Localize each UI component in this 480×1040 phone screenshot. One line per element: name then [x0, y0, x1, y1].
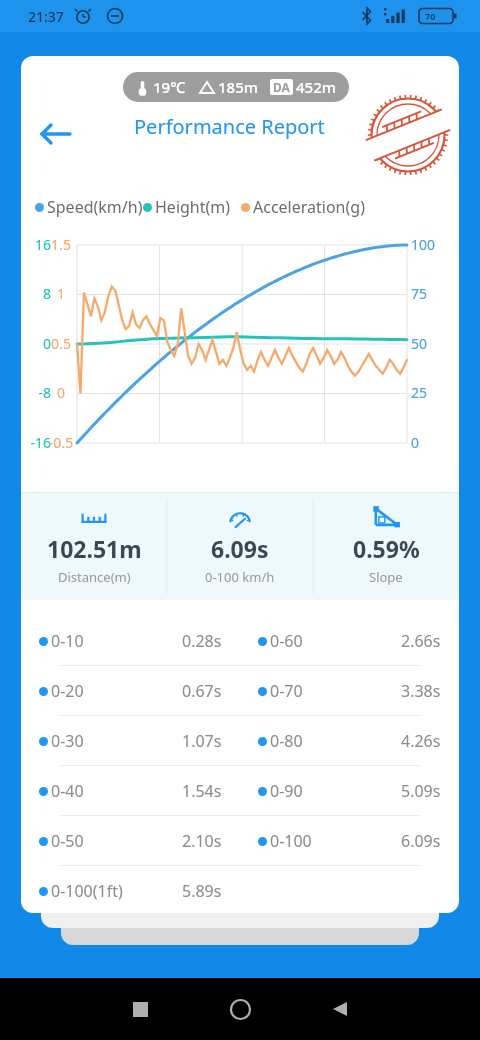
button[interactable]: 6.09s: [167, 492, 313, 600]
staticText: 70: [425, 10, 436, 22]
staticText: 25: [411, 383, 445, 402]
button[interactable]: 0-40: [21, 766, 459, 815]
staticText: 19℃: [153, 77, 186, 97]
staticText: 50: [411, 334, 445, 353]
staticText: 2.10s: [182, 830, 222, 852]
staticText: 0-60: [270, 630, 303, 652]
staticText: 16: [25, 235, 51, 254]
button[interactable]: 0-100(1ft): [21, 866, 459, 913]
staticText: 0-100: [270, 830, 312, 852]
button[interactable]: Back: [316, 985, 364, 1033]
staticText: 5.09s: [401, 780, 441, 802]
button[interactable]: 102.51m: [21, 492, 167, 600]
staticText: 0: [25, 334, 51, 353]
staticText: 0-20: [51, 680, 84, 702]
staticText: 3.38s: [401, 680, 441, 702]
button[interactable]: 0-20: [21, 666, 459, 715]
staticText: 185m: [218, 77, 258, 97]
staticText: 0.67s: [182, 680, 222, 702]
button[interactable]: Back: [29, 108, 81, 160]
staticText: 0-90: [270, 780, 303, 802]
button[interactable]: 0-50: [21, 816, 459, 865]
staticText: 0-30: [51, 730, 84, 752]
staticText: 0-100(1ft): [51, 880, 123, 902]
staticText: Slope: [369, 568, 403, 586]
staticText: 0: [47, 383, 75, 402]
staticText: 0.59%: [353, 533, 420, 564]
staticText: Height(m): [155, 196, 231, 218]
button[interactable]: 0-30: [21, 716, 459, 765]
staticText: 452m: [296, 77, 336, 97]
staticText: 4.26s: [401, 730, 441, 752]
button[interactable]: 0-10: [21, 616, 459, 665]
button[interactable]: Home: [216, 985, 264, 1033]
staticText: 1.07s: [182, 730, 222, 752]
staticText: -8: [25, 383, 51, 402]
staticText: -16: [25, 433, 51, 452]
staticText: 8: [25, 284, 51, 303]
staticText: 0-10: [51, 630, 84, 652]
button[interactable]: 19℃: [136, 72, 336, 102]
staticText: 100: [411, 235, 445, 254]
staticText: 6.09s: [211, 533, 269, 564]
staticText: Distance(m): [58, 568, 131, 586]
button[interactable]: 0.59%: [313, 492, 459, 600]
staticText: 1.54s: [182, 780, 222, 802]
staticText: 0-100 km/h: [205, 568, 275, 586]
staticText: 1: [47, 284, 75, 303]
staticText: Performance Report: [134, 113, 325, 140]
staticText: -0.5: [47, 433, 75, 452]
staticText: Acceleration(g): [253, 196, 365, 218]
staticText: 2.66s: [401, 630, 441, 652]
staticText: 0-70: [270, 680, 303, 702]
staticText: 102.51m: [47, 533, 142, 564]
staticText: Speed(km/h): [47, 196, 143, 218]
button[interactable]: Recent apps: [116, 985, 164, 1033]
staticText: 21:37: [28, 7, 64, 26]
staticText: 6.09s: [401, 830, 441, 852]
staticText: 0: [411, 433, 445, 452]
staticText: DA: [273, 79, 290, 95]
staticText: 0-40: [51, 780, 84, 802]
staticText: 0.28s: [182, 630, 222, 652]
staticText: 0.5: [47, 334, 75, 353]
staticText: 0-50: [51, 830, 84, 852]
staticText: 5.89s: [182, 880, 222, 902]
staticText: 0-80: [270, 730, 303, 752]
staticText: 75: [411, 284, 445, 303]
staticText: 1.5: [47, 235, 75, 254]
